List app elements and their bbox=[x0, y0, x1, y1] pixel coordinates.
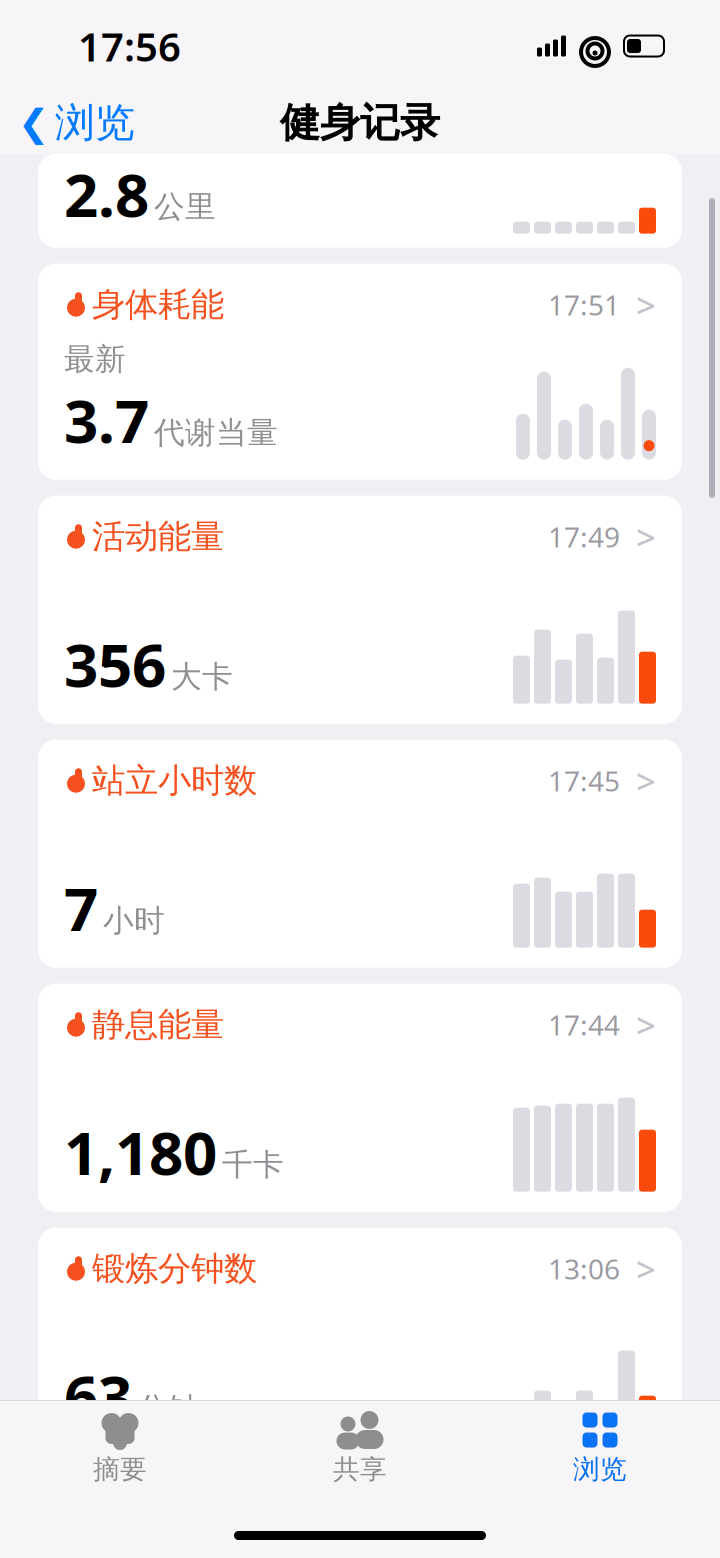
staticText: 代谢当量 bbox=[154, 414, 278, 452]
staticText: 7 bbox=[64, 868, 98, 948]
staticText: 17:51 bbox=[548, 286, 620, 323]
staticText: 最新 bbox=[64, 340, 126, 378]
staticText: 17:45 bbox=[548, 762, 620, 799]
staticText: 2.8 bbox=[64, 154, 149, 234]
staticText: 浏览 bbox=[55, 98, 135, 147]
staticText: 身体耗能 bbox=[92, 284, 224, 325]
staticText: ❮ bbox=[18, 102, 49, 144]
staticText: 公里 bbox=[154, 188, 216, 226]
staticText: 静息能量 bbox=[92, 1004, 224, 1045]
button[interactable]: 摘要 bbox=[0, 1401, 240, 1486]
staticText: > bbox=[636, 758, 656, 804]
staticText: 小时 bbox=[103, 902, 165, 940]
staticText: 1,180 bbox=[64, 1112, 217, 1192]
staticText: > bbox=[636, 1246, 656, 1292]
button[interactable]: 静息能量 bbox=[38, 984, 682, 1212]
staticText: > bbox=[636, 1002, 656, 1048]
staticText: 大卡 bbox=[171, 658, 233, 696]
button[interactable]: 站立小时数 bbox=[38, 740, 682, 968]
staticText: 摘要 bbox=[93, 1453, 147, 1486]
staticText: 17:49 bbox=[548, 518, 620, 555]
staticText: > bbox=[636, 514, 656, 560]
staticText: 63 bbox=[64, 1356, 132, 1436]
button[interactable]: 活动能量 bbox=[38, 496, 682, 724]
staticText: > bbox=[636, 282, 656, 328]
button[interactable]: 锻炼分钟数 bbox=[38, 1228, 682, 1456]
staticText: 站立小时数 bbox=[92, 760, 257, 801]
button[interactable]: 共享 bbox=[240, 1401, 480, 1486]
staticText: 千卡 bbox=[222, 1146, 284, 1184]
staticText: 共享 bbox=[333, 1453, 387, 1486]
staticText: 活动能量 bbox=[92, 516, 224, 557]
staticText: 13:06 bbox=[548, 1250, 620, 1287]
button[interactable]: 身体耗能 bbox=[38, 264, 682, 480]
button[interactable]: 2.8 bbox=[38, 154, 682, 248]
staticText: 356 bbox=[64, 624, 166, 704]
staticText: 健身记录 bbox=[280, 98, 440, 147]
button[interactable]: 浏览 bbox=[480, 1401, 720, 1486]
button[interactable]: ❮ bbox=[0, 90, 135, 155]
staticText: 17:44 bbox=[548, 1006, 620, 1043]
staticText: 浏览 bbox=[573, 1453, 627, 1486]
staticText: 分钟 bbox=[137, 1390, 199, 1428]
staticText: 3.7 bbox=[64, 380, 149, 460]
staticText: 17:56 bbox=[78, 19, 181, 72]
staticText: 锻炼分钟数 bbox=[92, 1248, 257, 1289]
